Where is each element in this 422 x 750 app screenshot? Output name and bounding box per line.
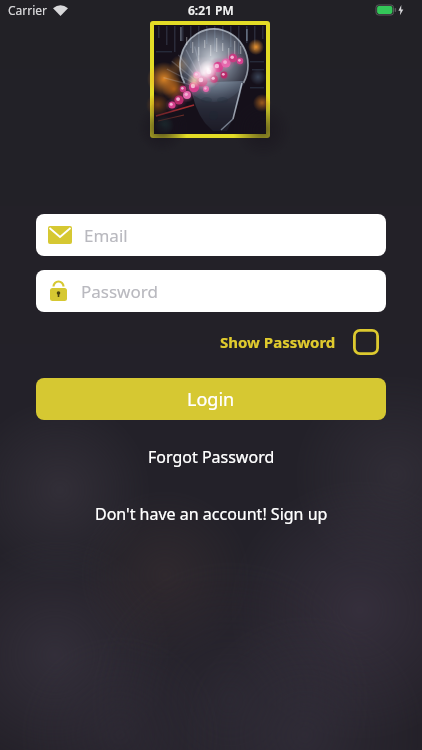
staticText: Login [187, 387, 235, 412]
staticText: Email [84, 224, 128, 247]
button[interactable]: Show Password [220, 329, 379, 355]
button[interactable]: Email [36, 214, 386, 256]
button[interactable]: Forgot Password [148, 446, 275, 468]
button[interactable]: Login [36, 378, 386, 420]
staticText: Carrier [8, 2, 48, 18]
staticText: Password [81, 280, 158, 303]
button[interactable]: Password [36, 270, 386, 312]
button[interactable]: Don't have an account! Sign up [95, 503, 328, 525]
staticText: 6:21 PM [188, 2, 234, 18]
staticText: Show Password [220, 332, 336, 352]
